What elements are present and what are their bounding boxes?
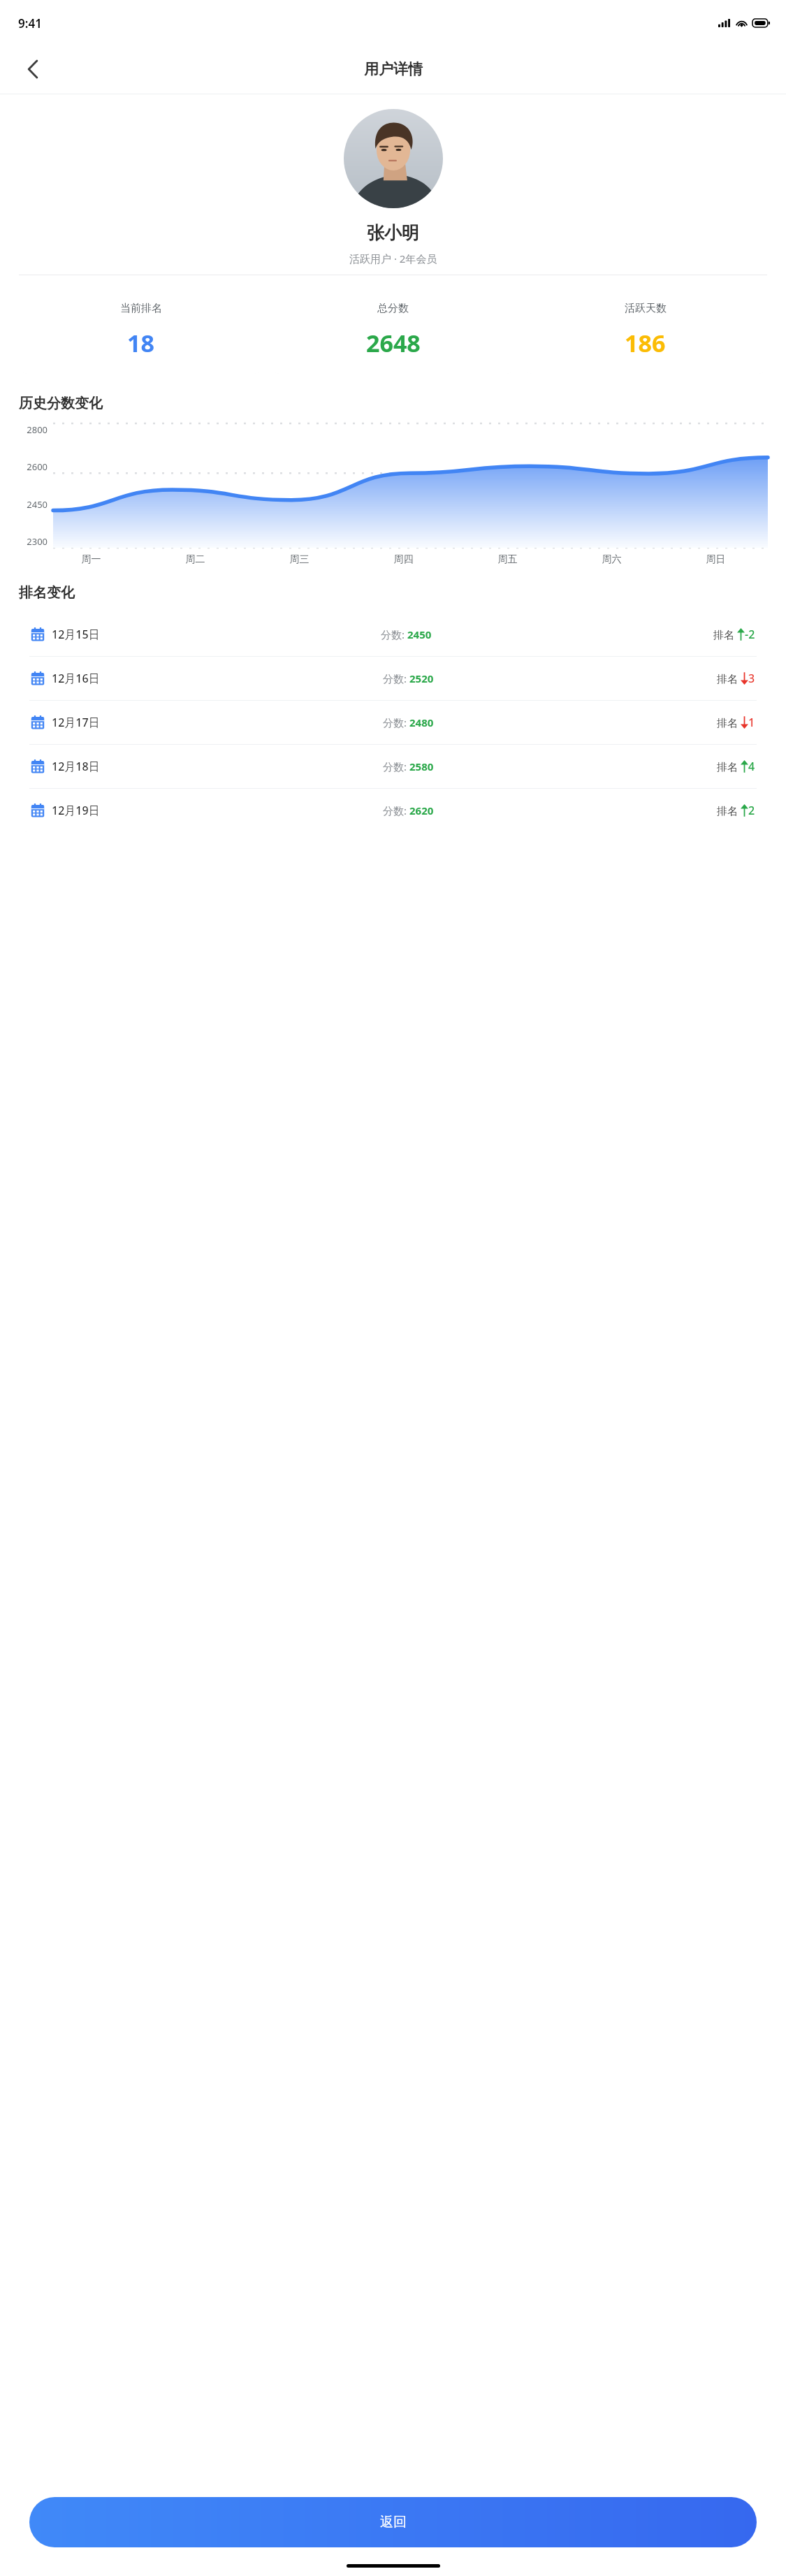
staticText: 2450	[27, 498, 48, 511]
staticText: 12月15日	[52, 627, 100, 642]
staticText: 用户详情	[364, 60, 423, 78]
button[interactable]: 返回	[29, 2497, 757, 2547]
button[interactable]: 12月15日	[18, 613, 768, 656]
staticText: 排名	[717, 671, 741, 685]
staticText: 周四	[351, 553, 456, 566]
staticText: 周三	[247, 553, 351, 566]
staticText: 12月19日	[52, 803, 100, 818]
staticText: 12月18日	[52, 759, 100, 774]
staticText: 周二	[143, 553, 247, 566]
staticText: 分数:	[383, 759, 409, 773]
staticText: 186	[625, 327, 666, 359]
button[interactable]: 总分数	[270, 287, 516, 374]
staticText: -2	[745, 627, 755, 642]
staticText: 排名	[717, 715, 741, 729]
staticText: 2600	[27, 460, 48, 473]
staticText: 排名	[713, 627, 737, 641]
staticText: 12月16日	[52, 671, 100, 686]
staticText: 活跃天数	[625, 302, 667, 315]
staticText: 2620	[409, 803, 434, 817]
button[interactable]: 12月18日	[18, 745, 768, 788]
button[interactable]: 12月16日	[18, 657, 768, 700]
staticText: 3	[748, 671, 755, 686]
staticText: 18	[127, 327, 154, 359]
staticText: 4	[748, 759, 755, 774]
staticText: 12月17日	[52, 715, 100, 730]
staticText: 2580	[409, 759, 434, 773]
staticText: 2800	[27, 423, 48, 436]
staticText: 历史分数变化	[19, 395, 786, 412]
button[interactable]: 活跃天数	[523, 287, 768, 374]
staticText: 1	[748, 715, 755, 730]
button[interactable]: 12月19日	[18, 789, 768, 832]
staticText: 2648	[366, 327, 421, 359]
staticText: 分数:	[383, 671, 409, 685]
staticText: 2520	[409, 671, 434, 685]
staticText: 排名	[717, 759, 741, 773]
staticText: 分数:	[383, 715, 409, 729]
staticText: 活跃用户 · 2年会员	[349, 252, 437, 265]
staticText: 2300	[27, 535, 48, 548]
staticText: 2450	[407, 627, 432, 641]
staticText: 当前排名	[120, 302, 162, 315]
button[interactable]: 当前排名	[18, 287, 263, 374]
staticText: 排名	[717, 803, 741, 817]
staticText: 2480	[409, 715, 434, 729]
button[interactable]: 用户头像	[344, 109, 443, 208]
staticText: 分数:	[381, 627, 407, 641]
staticText: 9:41	[18, 15, 42, 31]
button[interactable]: 12月17日	[18, 701, 768, 744]
staticText: 周五	[456, 553, 560, 566]
staticText: 周日	[664, 553, 768, 566]
staticText: 排名变化	[19, 584, 786, 602]
staticText: 总分数	[377, 302, 409, 315]
staticText: 周一	[39, 553, 143, 566]
staticText: 分数:	[383, 803, 409, 817]
staticText: 2	[748, 803, 755, 818]
staticText: 张小明	[367, 222, 419, 244]
button[interactable]: 返回	[14, 50, 52, 88]
staticText: 周六	[560, 553, 664, 566]
staticText: 返回	[380, 2514, 407, 2531]
